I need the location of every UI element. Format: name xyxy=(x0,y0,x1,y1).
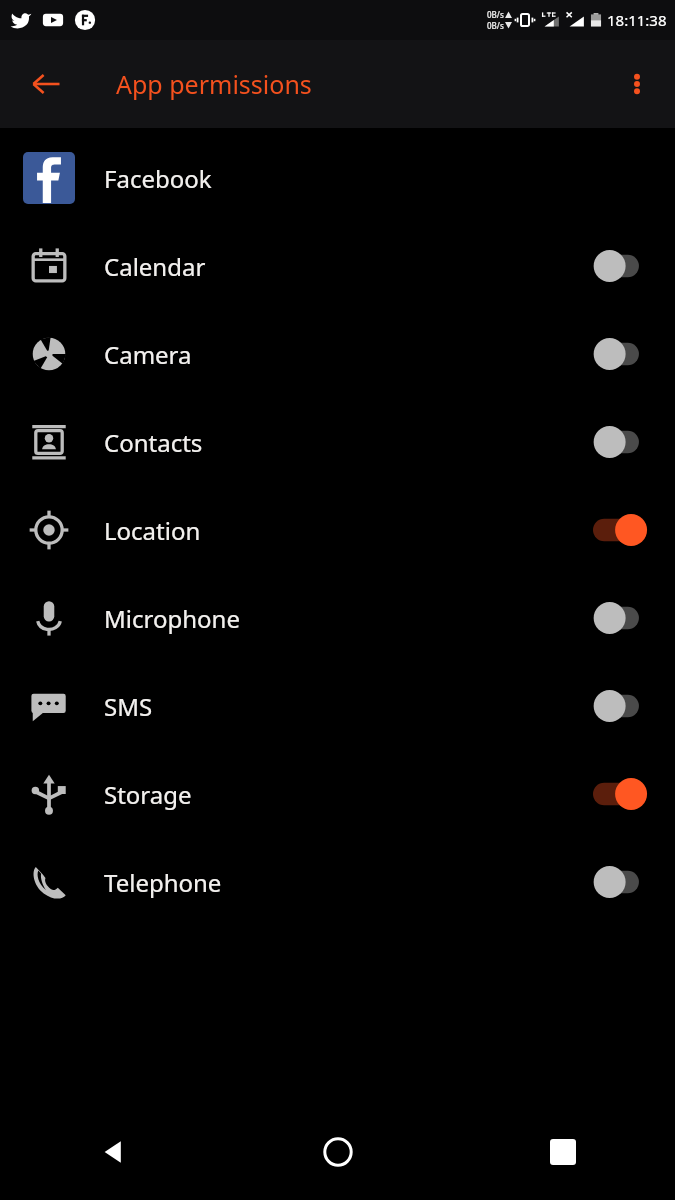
button[interactable]: Back xyxy=(20,58,72,110)
button[interactable]: Contacts xyxy=(0,398,675,486)
button[interactable]: Storage permission on xyxy=(585,770,657,818)
button[interactable]: Calendar permission off xyxy=(585,242,657,290)
button[interactable]: Home xyxy=(225,1104,450,1200)
button[interactable]: Back xyxy=(0,1104,225,1200)
staticText: Location xyxy=(104,514,201,547)
staticText: Microphone xyxy=(104,602,240,635)
button[interactable]: Location permission on xyxy=(585,506,657,554)
button[interactable]: Facebook xyxy=(0,134,675,222)
button[interactable]: Location xyxy=(0,486,675,574)
button[interactable]: SMS permission off xyxy=(585,682,657,730)
button[interactable]: Telephone permission off xyxy=(585,858,657,906)
button[interactable]: Contacts permission off xyxy=(585,418,657,466)
staticText: Contacts xyxy=(104,426,203,459)
staticText: 18:11:38 xyxy=(607,10,667,30)
staticText: Camera xyxy=(104,338,192,371)
staticText: Telephone xyxy=(104,866,222,899)
staticText: SMS xyxy=(104,690,153,723)
staticText: Facebook xyxy=(104,162,212,195)
button[interactable]: Recent apps xyxy=(450,1104,675,1200)
button[interactable]: Storage xyxy=(0,750,675,838)
button[interactable]: Microphone permission off xyxy=(585,594,657,642)
button[interactable]: Camera permission off xyxy=(585,330,657,378)
staticText: 0B/s xyxy=(487,20,504,31)
button[interactable]: Calendar xyxy=(0,222,675,310)
button[interactable]: More options xyxy=(613,60,661,108)
staticText: Storage xyxy=(104,778,192,811)
button[interactable]: SMS xyxy=(0,662,675,750)
staticText: App permissions xyxy=(116,67,312,101)
staticText: Calendar xyxy=(104,250,206,283)
button[interactable]: Camera xyxy=(0,310,675,398)
button[interactable]: Microphone xyxy=(0,574,675,662)
button[interactable]: Telephone xyxy=(0,838,675,926)
staticText: 0B/s xyxy=(487,9,504,20)
